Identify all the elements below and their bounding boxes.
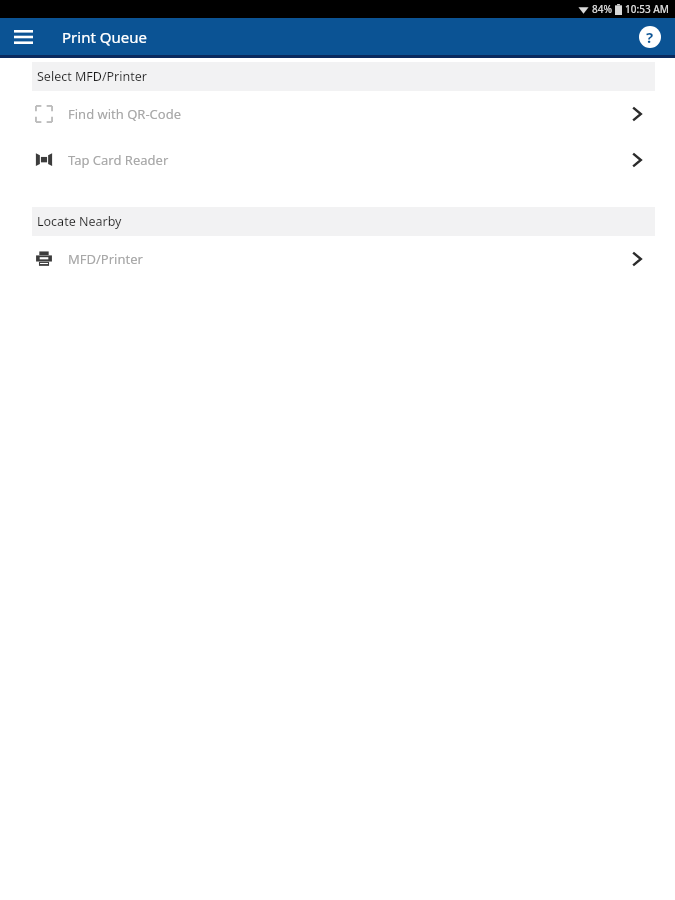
button[interactable]: QR code scan [0,91,675,137]
other: QR code scan [35,105,53,123]
staticText: Print Queue [62,27,147,47]
button[interactable]: Printer [0,236,675,282]
other: Card reader [35,151,53,169]
staticText: Find with QR-Code [68,105,182,123]
button[interactable]: Open navigation menu [6,20,40,54]
staticText: Locate Nearby [37,213,122,230]
other: Printer [35,250,53,268]
staticText: ? [646,27,654,47]
button[interactable]: Help [635,22,665,52]
staticText: 10:53 AM [625,2,669,16]
button[interactable]: Card reader [0,137,675,183]
staticText: Tap Card Reader [68,151,169,169]
staticText: MFD/Printer [68,250,143,268]
staticText: 84% [592,2,612,16]
staticText: Select MFD/Printer [37,68,147,85]
